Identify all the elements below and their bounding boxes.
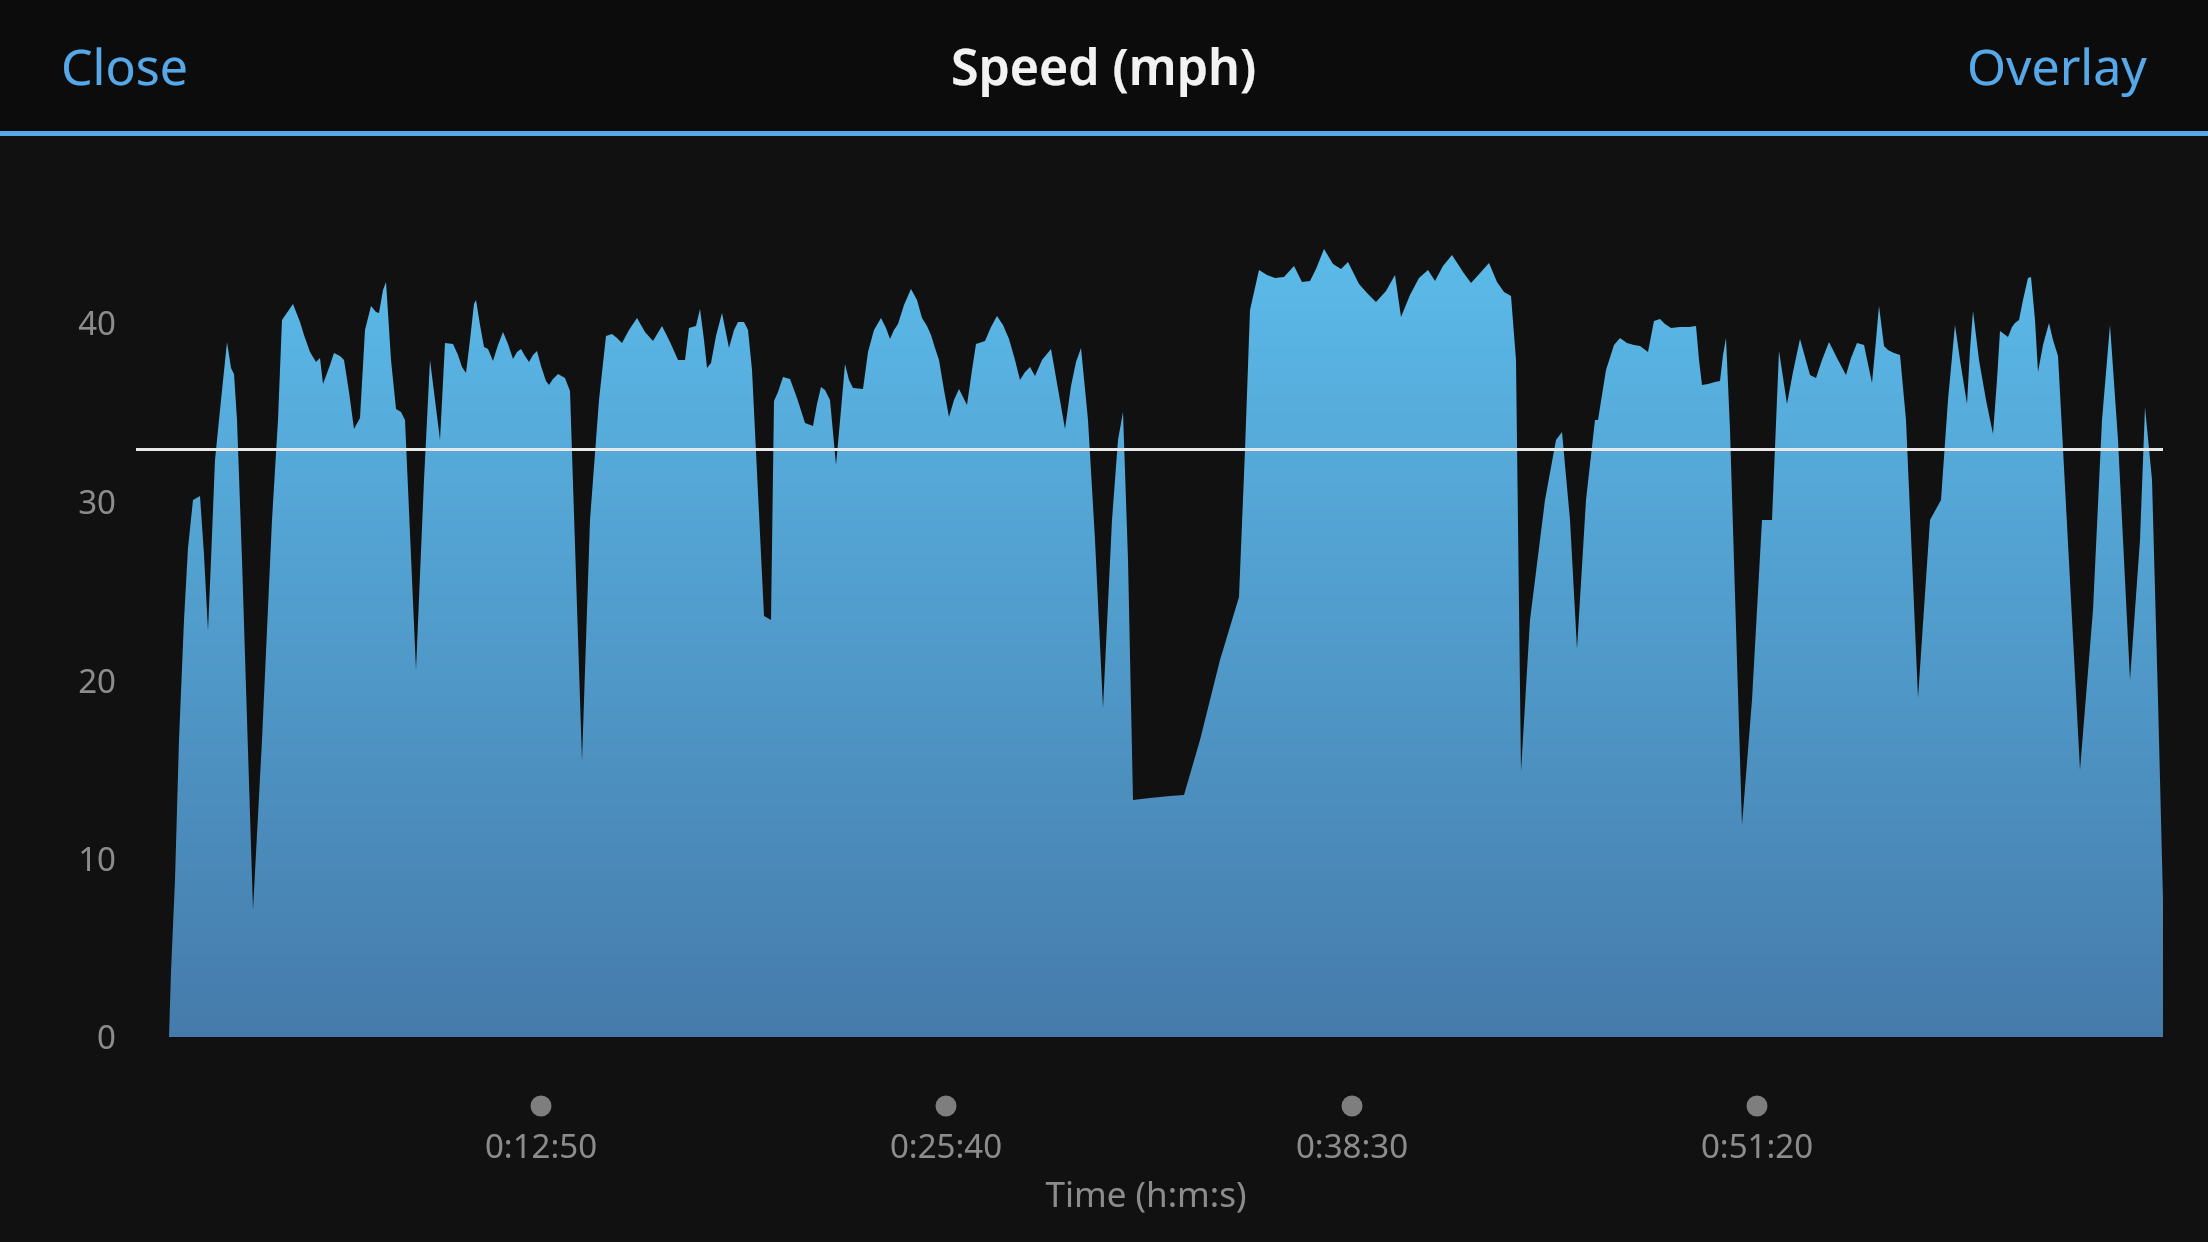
staticText: Overlay xyxy=(1967,32,2147,100)
button[interactable]: Overlay xyxy=(1913,8,2208,124)
staticText: 30 xyxy=(0,479,116,524)
staticText: 40 xyxy=(0,300,116,345)
staticText: 0:12:50 xyxy=(391,1123,691,1168)
staticText: 0:51:20 xyxy=(1607,1123,1907,1168)
staticText: Close xyxy=(61,32,188,100)
staticText: Speed (mph) xyxy=(951,32,1257,100)
staticText: 0:25:40 xyxy=(796,1123,1096,1168)
staticText: 0:38:30 xyxy=(1202,1123,1502,1168)
staticText: 0 xyxy=(0,1014,116,1059)
button[interactable]: Close xyxy=(0,8,242,124)
staticText: 20 xyxy=(0,658,116,703)
staticText: Time (h:m:s) xyxy=(996,1170,1296,1218)
staticText: 10 xyxy=(0,836,116,881)
button[interactable]: Speed chart xyxy=(0,136,2208,1242)
